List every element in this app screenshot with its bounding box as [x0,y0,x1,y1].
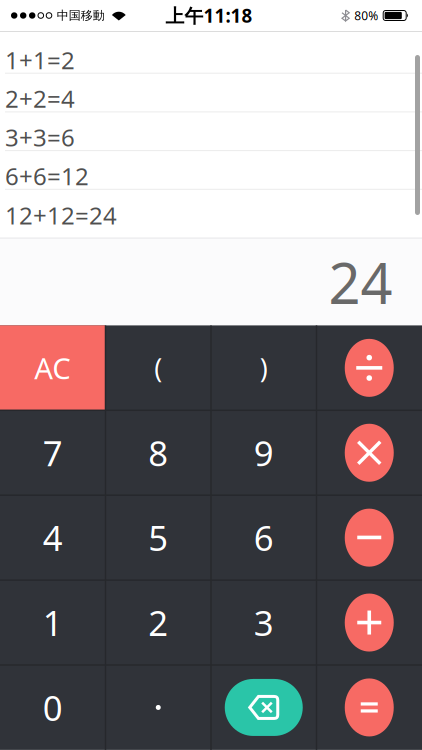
button[interactable]: AC [0,325,105,410]
button[interactable]: 3 [211,580,316,665]
staticText: 1 [43,599,63,645]
button[interactable]: 4 [0,495,105,580]
staticText: 上午11:18 [165,3,252,28]
button[interactable]: 9 [211,410,316,495]
staticText: 3+3=6 [5,121,75,153]
button[interactable] [316,665,422,750]
button[interactable]: 5 [105,495,211,580]
staticText: 2 [148,599,168,645]
button[interactable]: ) [211,325,316,410]
button[interactable] [316,325,422,410]
staticText: 0 [43,684,63,730]
staticText: 6 [254,515,274,561]
button[interactable]: 12+12=24 [0,190,422,228]
staticText: 4 [43,515,63,561]
staticText: 7 [43,430,63,476]
staticText: AC [34,348,71,387]
button[interactable]: 2+2=4 [0,74,422,111]
button[interactable]: ( [105,325,211,410]
button[interactable] [211,665,316,750]
staticText: ( [154,350,162,385]
button[interactable] [316,495,422,580]
button[interactable] [316,580,422,665]
staticText: 3 [254,599,274,645]
staticText: 5 [148,515,168,561]
staticText: ) [260,350,268,385]
staticText: 24 [328,245,392,320]
staticText: 80% [354,7,378,23]
staticText: 12+12=24 [5,199,117,231]
button[interactable]: 1+1=2 [0,35,422,73]
button[interactable]: 7 [0,410,105,495]
button[interactable]: 6 [211,495,316,580]
button[interactable] [316,410,422,495]
button[interactable] [105,665,211,750]
button[interactable]: 6+6=12 [0,151,422,189]
button[interactable]: 8 [105,410,211,495]
button[interactable]: 1 [0,580,105,665]
button[interactable]: 2 [105,580,211,665]
staticText: 2+2=4 [5,83,75,114]
staticText: 6+6=12 [5,160,89,192]
staticText: 9 [254,430,274,476]
staticText: 8 [148,430,168,476]
staticText: 中国移動 [57,8,105,23]
button[interactable]: 3+3=6 [0,112,422,150]
button[interactable]: 0 [0,665,105,750]
staticText: 1+1=2 [5,44,75,76]
